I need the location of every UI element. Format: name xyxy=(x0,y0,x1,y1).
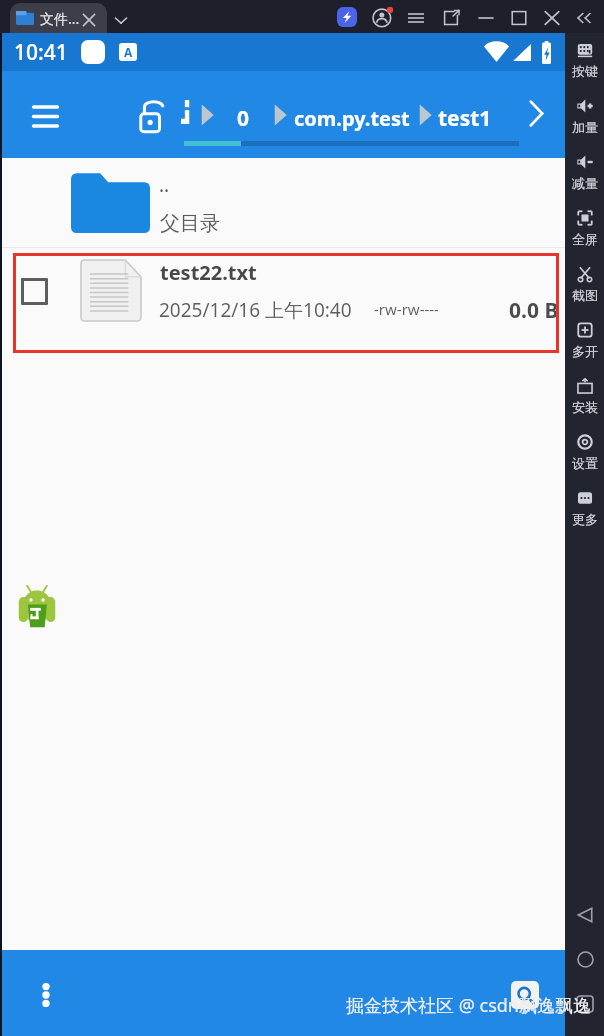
staticText: 2025/12/16 上午10:40 xyxy=(159,297,352,323)
button[interactable]: 设置 xyxy=(565,434,604,471)
button[interactable]: Recents xyxy=(570,989,600,1019)
staticText: -rw-rw---- xyxy=(374,299,439,319)
staticText: 减量 xyxy=(572,175,598,191)
button[interactable]: Home xyxy=(570,944,600,974)
button[interactable]: Back xyxy=(570,900,600,930)
staticText: test22.txt xyxy=(160,259,257,286)
button[interactable]: Account xyxy=(372,7,393,28)
button[interactable]: 多开 xyxy=(565,322,604,359)
button[interactable]: 加量 xyxy=(565,98,604,135)
button[interactable]: 减量 xyxy=(565,154,604,191)
button[interactable]: More tabs xyxy=(111,10,131,30)
button[interactable]: More options xyxy=(28,977,64,1013)
button[interactable]: 文件... xyxy=(10,3,107,33)
button[interactable]: Select file xyxy=(21,278,48,305)
button[interactable]: 全屏 xyxy=(565,210,604,247)
staticText: .. xyxy=(159,172,170,198)
button[interactable]: Boost xyxy=(337,7,357,27)
button[interactable]: Close tab xyxy=(79,10,99,30)
button[interactable]: Minimize xyxy=(476,8,496,28)
staticText: 更多 xyxy=(572,511,598,527)
staticText: com.py.test xyxy=(294,105,410,132)
staticText: 加量 xyxy=(572,119,598,135)
staticText: 多开 xyxy=(572,343,598,359)
button[interactable]: Close xyxy=(542,8,562,28)
staticText: 掘金技术社区 @ csdn飘逸飘逸 xyxy=(346,993,591,1018)
staticText: 文件... xyxy=(40,9,80,28)
staticText: 安装 xyxy=(572,399,598,415)
staticText: 全屏 xyxy=(572,231,598,247)
button[interactable]: Select file xyxy=(13,253,559,353)
staticText: 按键 xyxy=(572,63,598,79)
button[interactable]: 按键 xyxy=(565,42,604,79)
staticText: test1 xyxy=(438,104,492,133)
staticText: 截图 xyxy=(572,287,598,303)
staticText: A xyxy=(124,44,133,60)
button[interactable]: Restore xyxy=(441,8,461,28)
staticText: 0 xyxy=(237,104,250,133)
staticText: 10:41 xyxy=(14,38,68,67)
button[interactable]: 截图 xyxy=(565,266,604,303)
button[interactable]: 安装 xyxy=(565,378,604,415)
button[interactable]: Collapse xyxy=(574,8,594,28)
button[interactable]: 更多 xyxy=(565,490,604,527)
button[interactable]: Navigation menu xyxy=(17,88,73,144)
staticText: 设置 xyxy=(572,455,598,471)
staticText: 父目录 xyxy=(160,211,220,236)
button[interactable]: Menu xyxy=(406,8,426,28)
staticText: 0.0 B xyxy=(509,296,559,325)
button[interactable]: Search xyxy=(511,981,539,1009)
button[interactable]: Forward xyxy=(514,91,558,135)
button[interactable]: .. xyxy=(2,158,565,247)
button[interactable]: Maximize xyxy=(509,8,529,28)
